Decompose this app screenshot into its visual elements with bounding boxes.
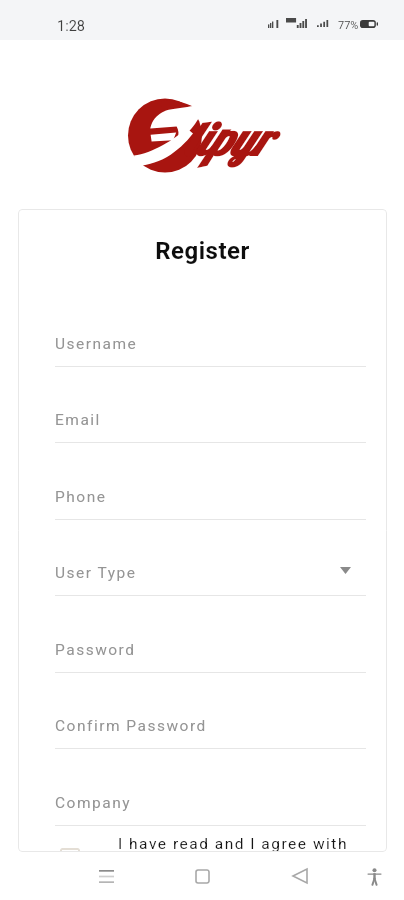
button[interactable]: Company	[55, 793, 366, 826]
staticText: Confirm Password	[55, 717, 207, 735]
staticText: Register	[18, 237, 387, 265]
staticText: Username	[55, 335, 138, 353]
button[interactable]: Phone	[55, 487, 366, 520]
button[interactable]: User Type	[55, 563, 366, 596]
staticText: User Type	[55, 564, 137, 582]
staticText: Phone	[55, 488, 107, 506]
staticText: I have read and I agree with	[118, 835, 348, 852]
button[interactable]: Accessibility	[359, 861, 389, 891]
staticText: lipyr	[183, 110, 269, 168]
staticText: 77%	[338, 19, 359, 32]
staticText: Password	[55, 641, 136, 659]
staticText: Email	[55, 411, 101, 429]
button[interactable]: Home	[183, 857, 221, 895]
button[interactable]: Confirm Password	[55, 716, 366, 749]
button[interactable]: Username	[55, 334, 366, 367]
button[interactable]: I have read and I agree with	[118, 833, 348, 852]
button[interactable]: Email	[55, 410, 366, 443]
button[interactable]: Recent apps	[87, 857, 125, 895]
button[interactable]: Password	[55, 640, 366, 673]
button[interactable]: Back	[281, 857, 319, 895]
staticText: Company	[55, 794, 132, 812]
button[interactable]: Agree to terms	[60, 848, 80, 852]
staticText: 1:28	[57, 18, 85, 35]
